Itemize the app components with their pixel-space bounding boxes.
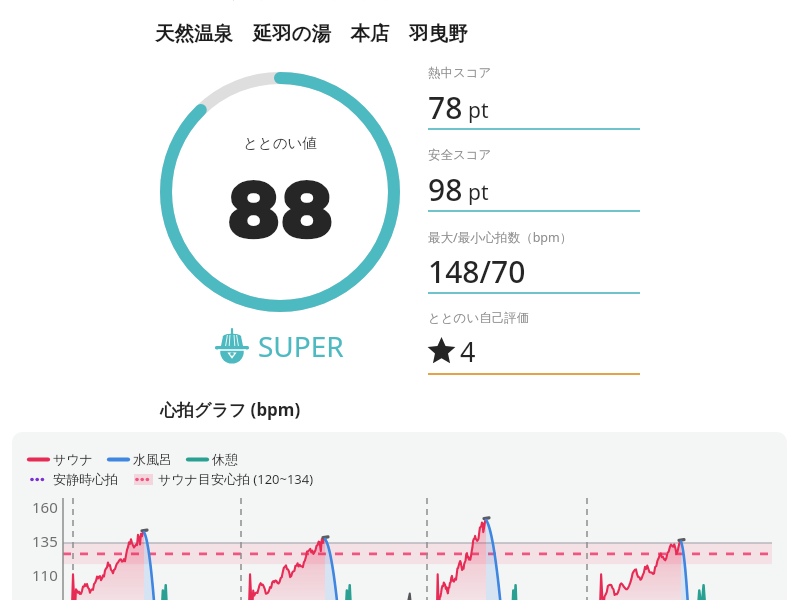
staticText: 4: [460, 333, 476, 370]
button[interactable]: Totonoi rank badge: [212, 326, 344, 366]
button[interactable]: サウナ目安心拍 (120~134): [134, 470, 314, 488]
staticText: 78: [428, 87, 463, 127]
staticText: サウナ: [53, 451, 93, 467]
button[interactable]: 水風呂: [109, 451, 172, 467]
button[interactable]: サウナ: [29, 451, 93, 467]
staticText: 休憩: [212, 451, 238, 467]
staticText: 心拍グラフ (bpm): [160, 398, 301, 421]
staticText: 148/70: [428, 251, 526, 291]
staticText: ととのい値: [243, 134, 317, 152]
staticText: ととのい自己評価: [428, 310, 530, 326]
staticText: 最大/最小心拍数（bpm）: [428, 229, 573, 246]
staticText: 安静時心拍: [53, 471, 118, 487]
button[interactable]: 最大/最小心拍数（bpm）: [428, 228, 640, 298]
staticText: 水風呂: [133, 451, 172, 467]
staticText: 160: [32, 497, 58, 517]
button[interactable]: 休憩: [188, 451, 238, 467]
button[interactable]: ととのい自己評価: [428, 309, 640, 379]
staticText: 天然温泉 延羽の湯 本店 羽曳野: [155, 19, 468, 46]
staticText: pt: [468, 96, 489, 125]
staticText: SUPER: [258, 327, 344, 365]
staticText: 安全スコア: [428, 147, 492, 163]
staticText: 135: [32, 531, 58, 551]
button[interactable]: 安静時心拍: [29, 471, 118, 487]
staticText: 98: [428, 169, 463, 209]
staticText: 110: [32, 565, 58, 585]
other: Totonoi rank badge: [212, 326, 252, 366]
staticText: pt: [468, 178, 489, 207]
staticText: サウナ目安心拍 (120~134): [158, 470, 314, 488]
staticText: 熱中スコア: [428, 65, 492, 81]
button[interactable]: 安全スコア: [428, 146, 640, 216]
staticText: 88: [227, 167, 334, 254]
button[interactable]: 熱中スコア: [428, 64, 640, 134]
